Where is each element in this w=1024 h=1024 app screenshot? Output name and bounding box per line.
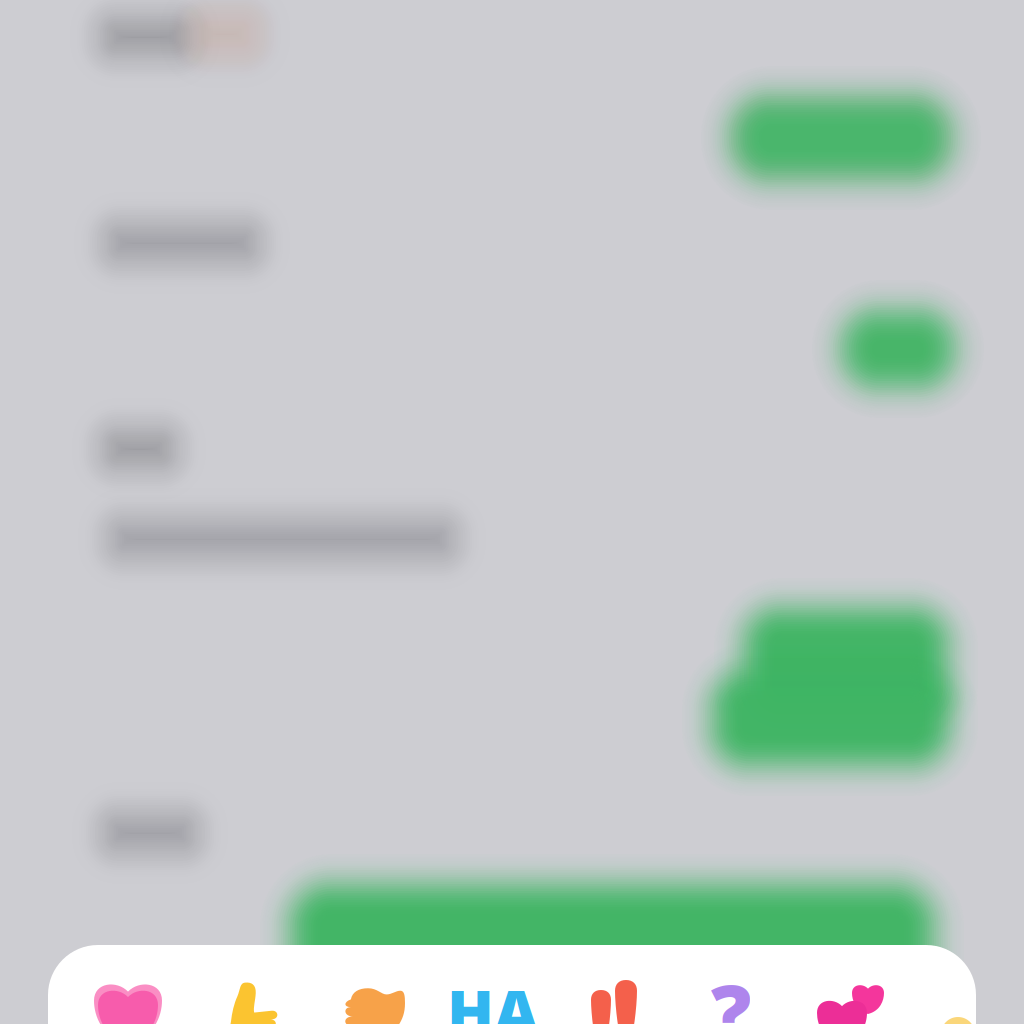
button[interactable]: More reactions xyxy=(928,1002,988,1024)
button[interactable]: Add reaction xyxy=(795,977,907,1024)
button[interactable]: Question xyxy=(675,975,787,1024)
staticText: HA xyxy=(447,970,539,1024)
staticText: ? xyxy=(711,959,751,1024)
button[interactable]: HA xyxy=(437,974,549,1024)
button[interactable]: Like xyxy=(194,976,306,1024)
button[interactable]: Love xyxy=(72,976,184,1024)
button[interactable]: Dislike xyxy=(316,981,428,1024)
button[interactable]: Exclaim xyxy=(557,975,669,1024)
